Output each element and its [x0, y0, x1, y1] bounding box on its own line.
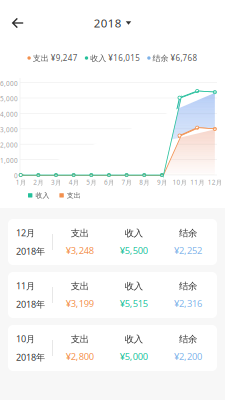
staticText: 支出 [67, 191, 81, 200]
staticText: 10月 [16, 333, 35, 345]
staticText: 12月 [16, 227, 35, 239]
staticText: ¥2,200 [174, 350, 202, 363]
staticText: 收入 [125, 280, 143, 292]
button[interactable]: 2018 [86, 5, 139, 41]
staticText: 2月 [33, 178, 43, 187]
staticText: 支出 [71, 280, 89, 292]
staticText: 7月 [122, 178, 132, 187]
staticText: 1月 [16, 178, 26, 187]
staticText: 2018年 [16, 298, 45, 310]
button[interactable]: 10月 [8, 325, 217, 371]
staticText: 10月 [172, 178, 186, 187]
staticText: 结余 [179, 280, 197, 292]
staticText: 4,000 [0, 110, 18, 119]
staticText: 5,000 [0, 94, 18, 103]
staticText: 支出 [71, 333, 89, 345]
staticText: 2018 [94, 15, 122, 31]
staticText: 支出 ¥9,247 [31, 53, 78, 63]
staticText: 收入 ¥16,015 [88, 53, 140, 63]
staticText: 结余 ¥6,768 [151, 53, 198, 63]
staticText: 结余 [179, 227, 197, 239]
staticText: 收入 [125, 227, 143, 239]
staticText: 收入 [35, 191, 49, 200]
staticText: 0 [14, 171, 18, 180]
staticText: 3月 [51, 178, 61, 187]
staticText: 12月 [208, 178, 222, 187]
staticText: 结余 [179, 333, 197, 345]
staticText: 11月 [190, 178, 204, 187]
staticText: ¥2,252 [174, 244, 202, 257]
staticText: 2018年 [16, 245, 45, 257]
staticText: 2018年 [16, 351, 45, 363]
staticText: 3,000 [0, 125, 18, 134]
staticText: ¥2,316 [174, 297, 202, 310]
staticText: 4月 [69, 178, 79, 187]
staticText: 1,000 [0, 156, 18, 165]
staticText: ¥5,515 [120, 297, 148, 310]
staticText: ¥2,800 [66, 350, 94, 363]
staticText: ¥5,000 [120, 350, 148, 363]
staticText: 9月 [157, 178, 167, 187]
staticText: ¥3,199 [66, 297, 94, 310]
staticText: 6月 [104, 178, 114, 187]
staticText: 5月 [86, 178, 96, 187]
staticText: 11月 [16, 280, 35, 292]
staticText: 8月 [139, 178, 149, 187]
staticText: 2,000 [0, 141, 18, 149]
staticText: 支出 [71, 227, 89, 239]
button[interactable]: 12月 [8, 219, 217, 265]
staticText: ¥5,500 [120, 244, 148, 257]
staticText: 收入 [125, 333, 143, 345]
staticText: 6,000 [0, 79, 18, 88]
button[interactable]: 11月 [8, 272, 217, 318]
staticText: ¥3,248 [66, 244, 94, 257]
button[interactable]: Back [0, 5, 36, 41]
